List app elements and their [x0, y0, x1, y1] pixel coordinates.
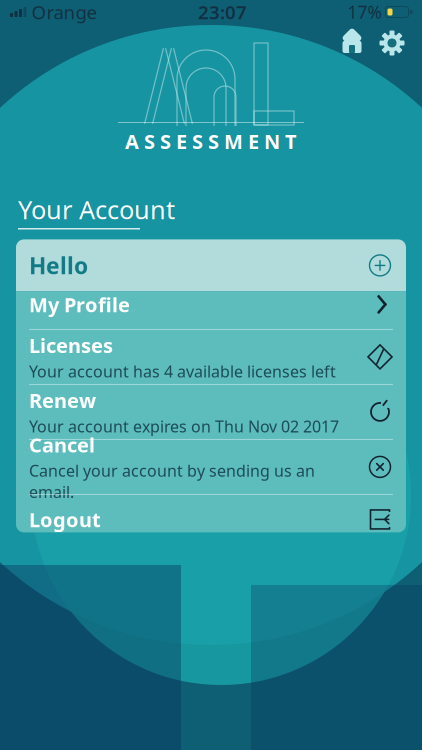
button[interactable]: Settings: [372, 26, 412, 60]
staticText: Cancel your account by sending us an ema…: [29, 460, 315, 502]
staticText: Hello: [29, 250, 88, 280]
button[interactable]: Hello: [16, 239, 406, 291]
staticText: Your account has 4 available licenses le…: [29, 361, 336, 382]
staticText: Cancel: [29, 431, 95, 458]
staticText: Your account expires on Thu Nov 02 2017: [29, 416, 339, 437]
button[interactable]: Logout: [16, 495, 406, 544]
staticText: My Profile: [29, 291, 130, 318]
staticText: Renew: [29, 387, 96, 414]
staticText: A S S E S S M E N T: [125, 128, 297, 155]
button[interactable]: Licenses: [16, 330, 406, 384]
staticText: Your Account: [18, 193, 175, 226]
button[interactable]: Renew: [16, 385, 406, 439]
staticText: 17%: [347, 0, 381, 23]
staticText: Orange: [31, 0, 97, 24]
staticText: 23:07: [198, 0, 247, 24]
button[interactable]: Cancel: [16, 440, 406, 494]
button[interactable]: My Profile: [16, 280, 406, 329]
staticText: Logout: [29, 506, 101, 533]
button[interactable]: Home: [332, 26, 372, 60]
staticText: Licenses: [29, 332, 113, 359]
